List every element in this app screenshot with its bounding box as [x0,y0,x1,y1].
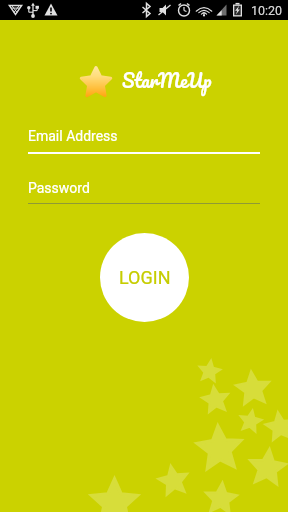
other: StarMeUp logo [79,65,113,99]
button[interactable]: LOGIN [100,233,189,322]
staticText: Email Address [28,128,118,144]
button[interactable]: Email Address [28,124,260,154]
staticText: 10:20 [251,3,283,18]
staticText: Password [28,180,90,196]
staticText: StarMeUp [122,65,212,97]
staticText: LOGIN [119,267,171,288]
button[interactable]: Password [28,176,260,204]
